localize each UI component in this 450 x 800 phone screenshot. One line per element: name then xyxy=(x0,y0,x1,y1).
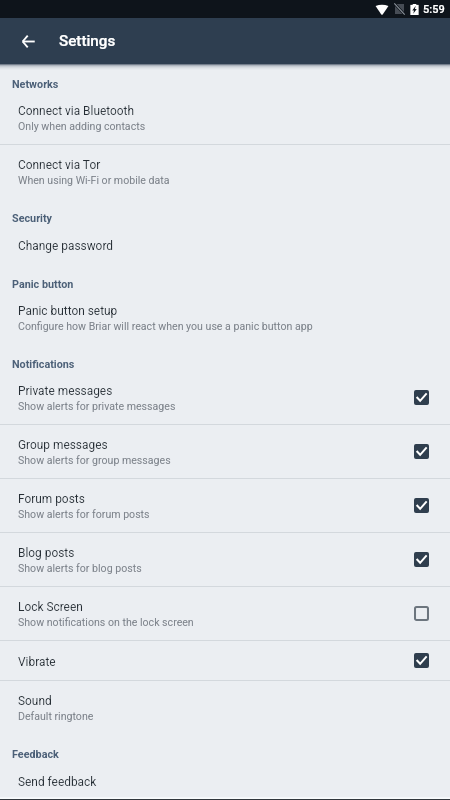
button[interactable]: Back xyxy=(12,25,44,57)
staticText: When using Wi-Fi or mobile data xyxy=(18,174,170,186)
button[interactable]: Blog posts xyxy=(0,533,450,586)
staticText: Settings xyxy=(59,32,116,50)
staticText: Forum posts xyxy=(18,492,85,506)
button[interactable]: Send feedback xyxy=(0,761,450,800)
button[interactable]: Lock Screen xyxy=(0,587,450,640)
button[interactable]: Connect via Tor xyxy=(0,145,450,198)
staticText: Send feedback xyxy=(18,775,97,789)
button[interactable]: Checked xyxy=(408,384,434,410)
staticText: 5:59 xyxy=(423,3,445,16)
staticText: Connect via Tor xyxy=(18,158,101,172)
button[interactable]: Connect via Bluetooth xyxy=(0,91,450,144)
staticText: Configure how Briar will react when you … xyxy=(18,320,313,332)
staticText: Show alerts for group messages xyxy=(18,454,171,466)
staticText: Group messages xyxy=(18,438,108,452)
button[interactable]: Checked xyxy=(408,438,434,464)
staticText: Panic button setup xyxy=(18,304,118,318)
staticText: Security xyxy=(12,212,53,225)
staticText: Panic button xyxy=(12,278,74,291)
button[interactable]: Private messages xyxy=(0,371,450,424)
staticText: Notifications xyxy=(12,358,75,371)
button[interactable]: Group messages xyxy=(0,425,450,478)
button[interactable]: Checked xyxy=(408,546,434,572)
button[interactable]: Unchecked xyxy=(408,600,434,626)
staticText: Connect via Bluetooth xyxy=(18,104,135,118)
button[interactable]: Checked xyxy=(408,492,434,518)
button[interactable]: Vibrate xyxy=(0,641,450,680)
staticText: Networks xyxy=(12,78,59,91)
button[interactable]: Change password xyxy=(0,225,450,264)
staticText: Change password xyxy=(18,239,114,253)
staticText: Blog posts xyxy=(18,546,75,560)
button[interactable]: Checked xyxy=(408,647,434,673)
staticText: Sound xyxy=(18,694,52,708)
staticText: Default ringtone xyxy=(18,710,94,722)
staticText: Vibrate xyxy=(18,655,56,669)
staticText: Lock Screen xyxy=(18,600,83,614)
staticText: Show alerts for blog posts xyxy=(18,562,142,574)
button[interactable]: Panic button setup xyxy=(0,291,450,344)
staticText: Show alerts for forum posts xyxy=(18,508,150,520)
button[interactable]: Sound xyxy=(0,681,450,734)
button[interactable]: Forum posts xyxy=(0,479,450,532)
staticText: Show notifications on the lock screen xyxy=(18,616,194,628)
staticText: Show alerts for private messages xyxy=(18,400,176,412)
staticText: Only when adding contacts xyxy=(18,120,146,132)
staticText: Feedback xyxy=(12,748,59,761)
staticText: Private messages xyxy=(18,384,113,398)
